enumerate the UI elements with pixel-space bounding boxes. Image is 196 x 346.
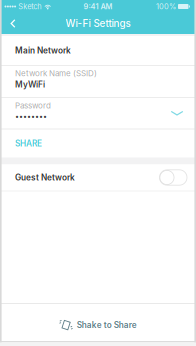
staticText: Wi-Fi Settings: [65, 17, 130, 29]
staticText: Shake to Share: [77, 320, 137, 330]
staticText: Guest Network: [15, 172, 75, 182]
staticText: MyWiFi: [15, 80, 45, 90]
button[interactable]: Shake to Share: [0, 304, 196, 346]
staticText: Sketch: [18, 2, 41, 11]
staticText: Password: [15, 101, 51, 110]
staticText: 100%: [156, 2, 176, 11]
staticText: 9:41 AM: [83, 2, 112, 11]
button[interactable]: Guest Network: [0, 164, 196, 190]
staticText: Network Name (SSID): [15, 68, 97, 78]
staticText: Main Network: [15, 45, 71, 55]
button[interactable]: SHARE: [0, 129, 196, 157]
staticText: ••••••••: [15, 112, 47, 121]
staticText: SHARE: [15, 138, 42, 148]
button[interactable]: Back: [0, 13, 26, 34]
button[interactable]: Show password: [165, 101, 189, 125]
